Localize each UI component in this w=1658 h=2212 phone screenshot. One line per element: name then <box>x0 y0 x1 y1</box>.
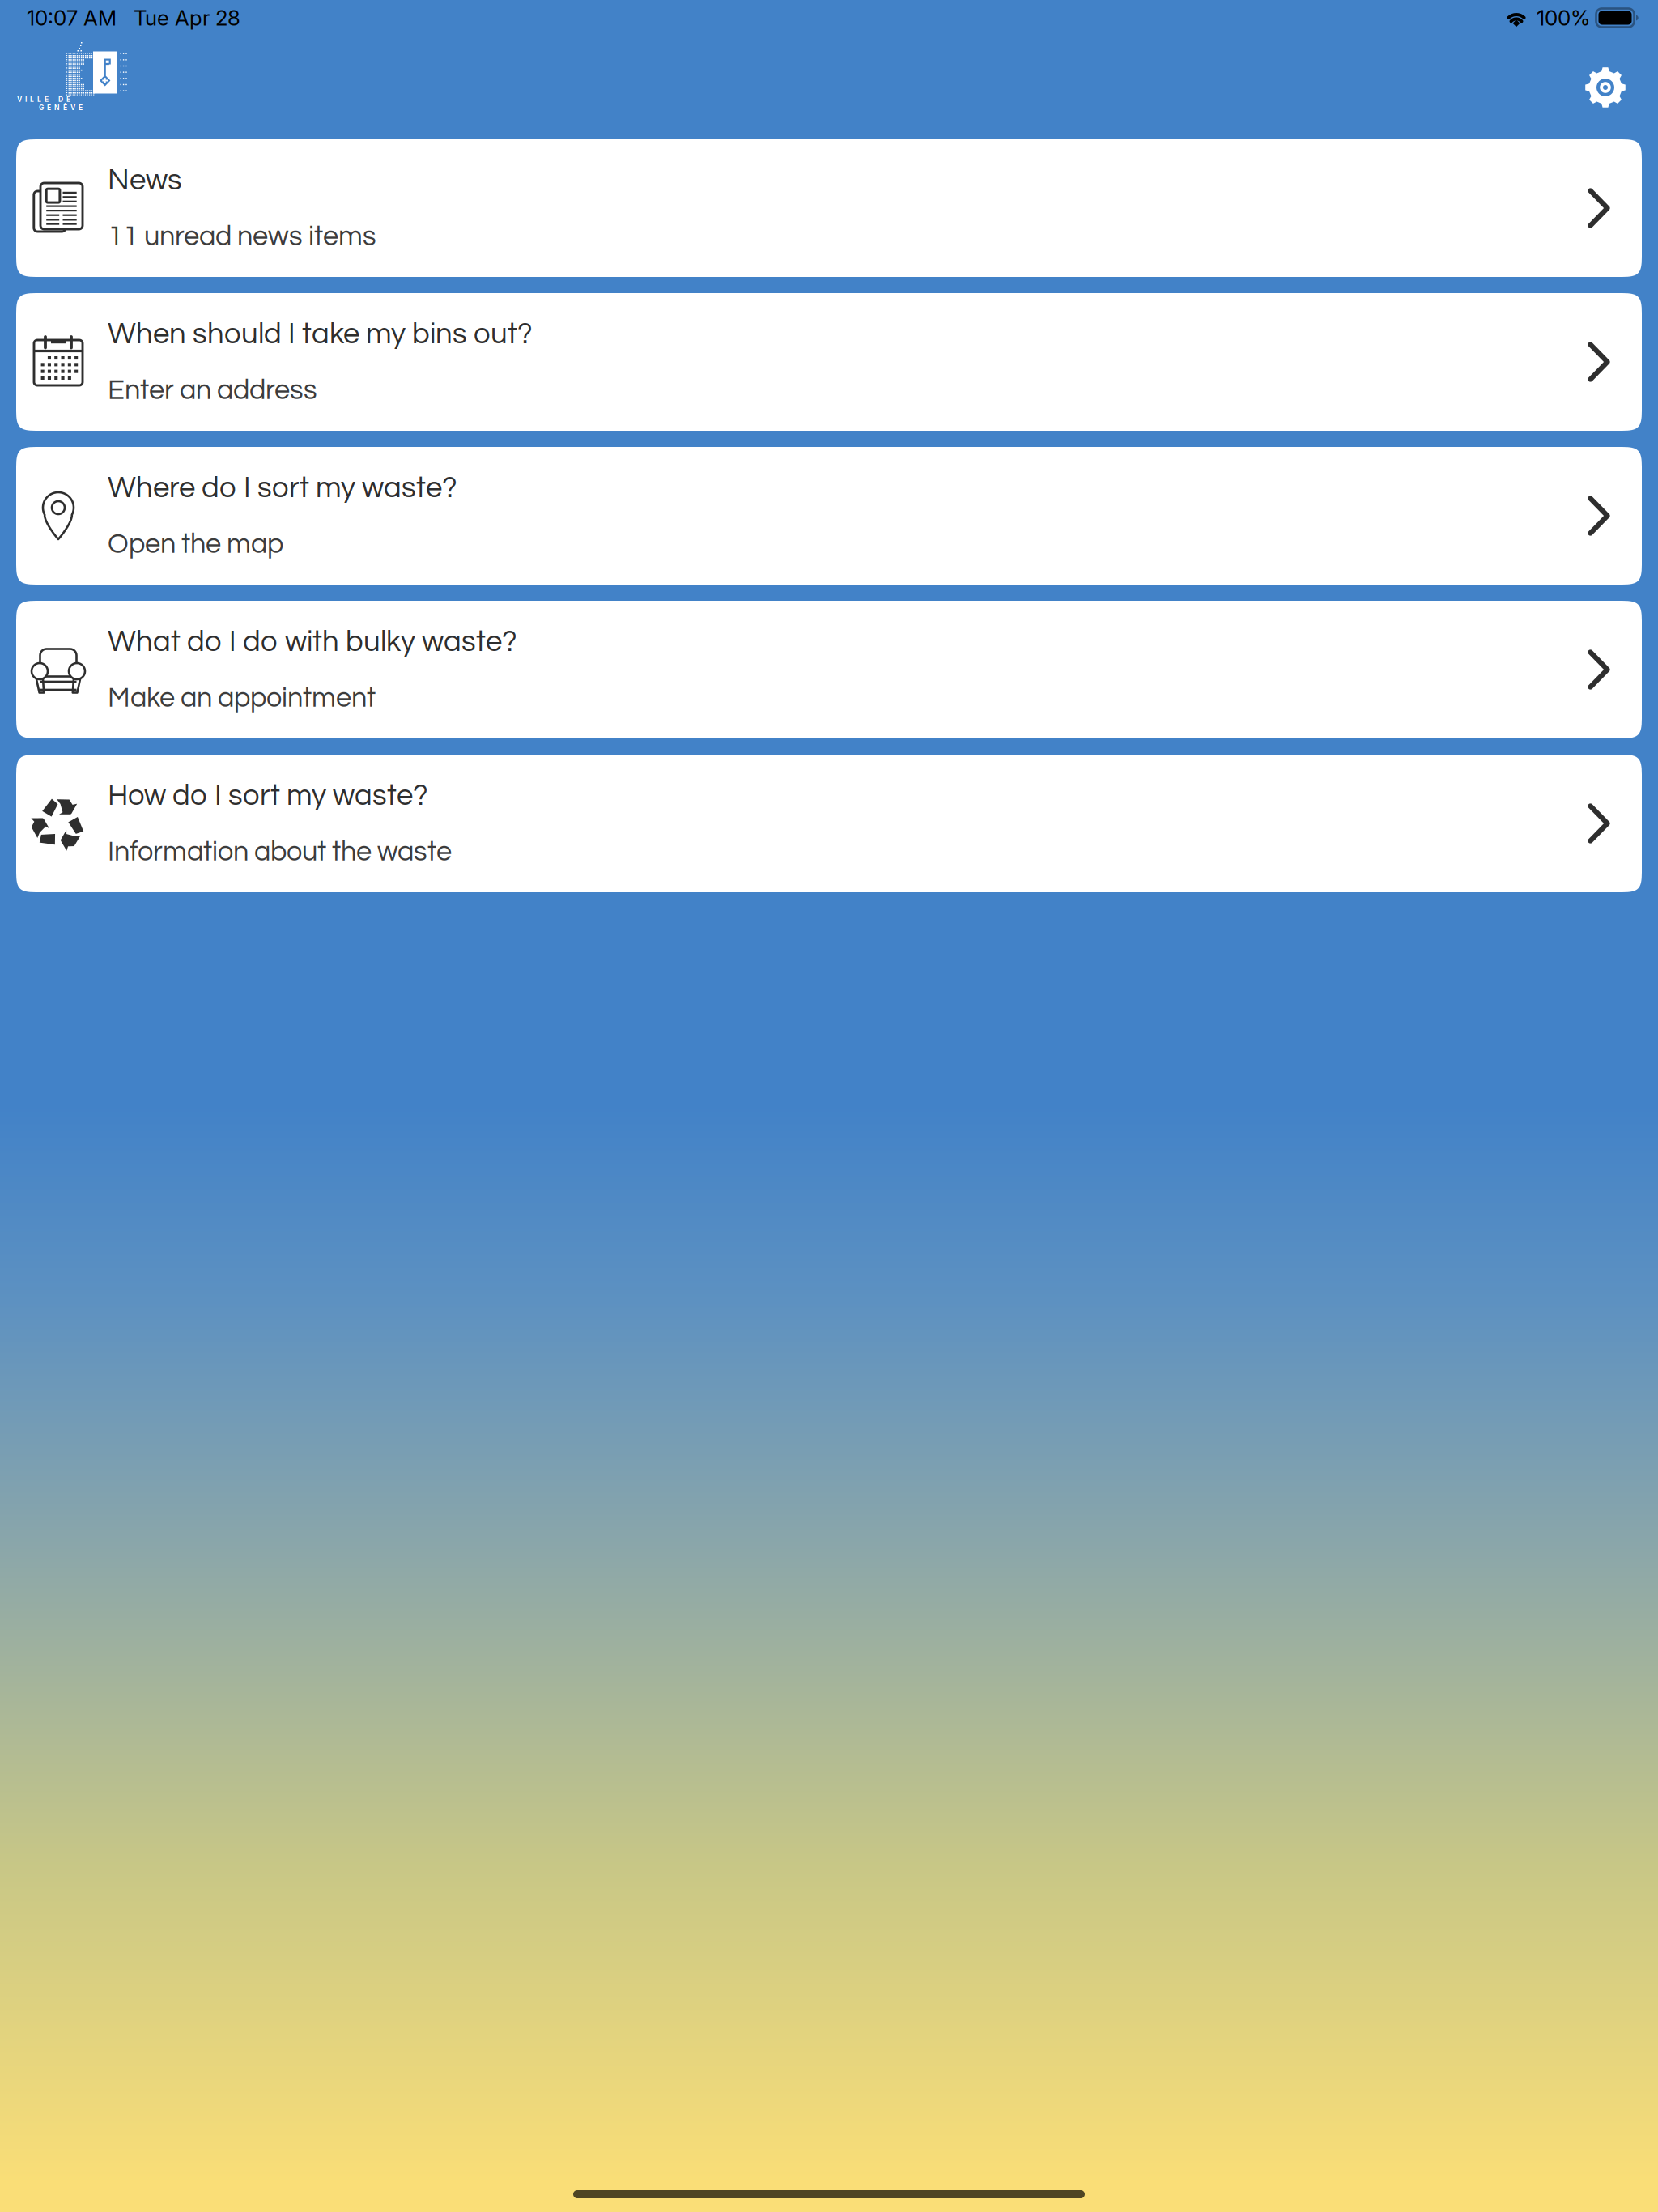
staticText: Enter an address <box>108 376 317 405</box>
staticText: Where do I sort my waste? <box>108 473 457 503</box>
button[interactable]: When should I take my bins out? <box>16 293 1642 431</box>
button[interactable]: How do I sort my waste? <box>16 755 1642 892</box>
staticText: Open the map <box>108 530 283 559</box>
button[interactable]: News <box>16 139 1642 277</box>
staticText: V I L L E D E <box>17 95 70 103</box>
button[interactable]: Settings <box>1561 43 1650 132</box>
staticText: Information about the waste <box>108 838 452 866</box>
staticText: What do I do with bulky waste? <box>108 627 517 657</box>
staticText: How do I sort my waste? <box>108 781 428 811</box>
staticText: Tue Apr 28 <box>134 5 240 31</box>
staticText: G E N È V E <box>39 103 83 112</box>
staticText: Make an appointment <box>108 684 376 712</box>
staticText: 11 unread news items <box>108 222 376 251</box>
staticText: When should I take my bins out? <box>108 319 533 349</box>
staticText: 10:07 AM <box>27 5 117 31</box>
staticText: 100% <box>1537 5 1590 31</box>
button[interactable]: What do I do with bulky waste? <box>16 601 1642 738</box>
staticText: News <box>108 165 182 196</box>
button[interactable]: Where do I sort my waste? <box>16 447 1642 585</box>
